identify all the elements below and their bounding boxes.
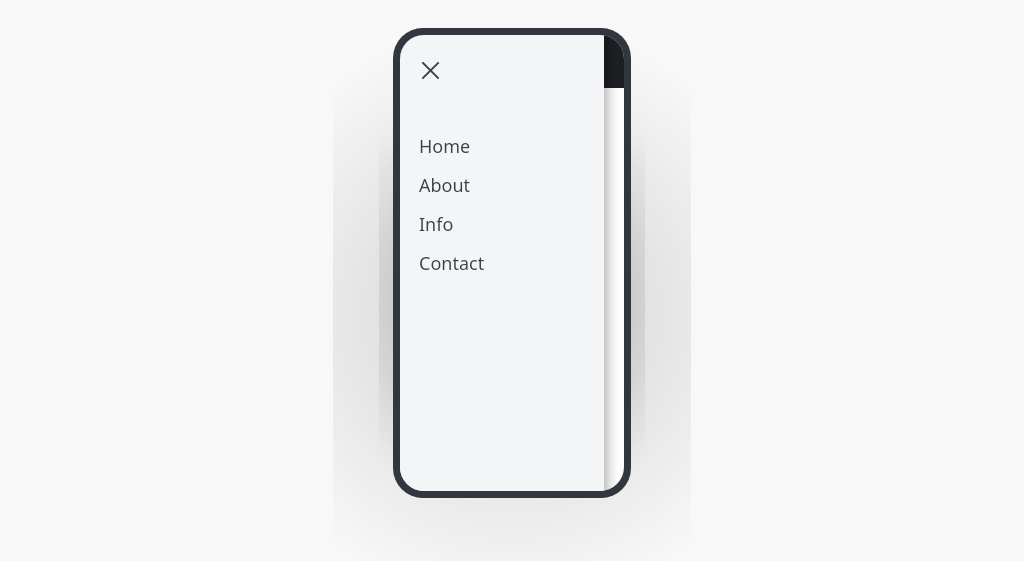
button[interactable]: Info [400, 205, 604, 244]
staticText: Home [419, 134, 471, 159]
staticText: Info [419, 212, 454, 237]
button[interactable]: About [400, 166, 604, 205]
staticText: About [419, 173, 471, 198]
button[interactable]: Close menu [413, 53, 447, 87]
staticText: Contact [419, 251, 485, 276]
button[interactable]: Home [400, 127, 604, 166]
button[interactable]: Contact [400, 244, 604, 283]
